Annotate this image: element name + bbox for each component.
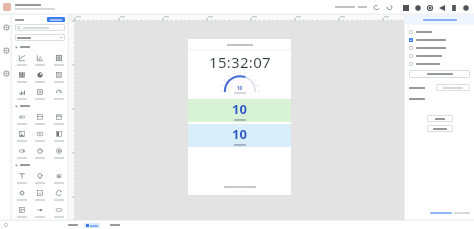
button[interactable]: Component SLIDER (31, 203, 49, 220)
button[interactable]: Component IMG (13, 127, 31, 144)
button[interactable]: Component LIST (50, 68, 68, 85)
button[interactable]: Component CALENDAR (50, 110, 68, 127)
button[interactable]: Zoom (437, 3, 446, 12)
button[interactable]: Section (12, 161, 68, 169)
button[interactable]: Confirm (427, 115, 453, 122)
button[interactable]: Component BARS (13, 85, 31, 102)
button[interactable]: Page tab 2 selected (86, 224, 98, 227)
button[interactable]: Component PIE (31, 68, 49, 85)
button[interactable]: Settings (461, 3, 470, 12)
button[interactable]: Component TEXT (13, 169, 31, 186)
button[interactable]: Component GAUGE (50, 85, 68, 102)
button[interactable]: Component PANEL (50, 127, 68, 144)
button[interactable]: Component PICTURE (31, 186, 49, 203)
button[interactable]: Component DIAL (31, 144, 49, 161)
button[interactable]: Layers (425, 3, 434, 12)
button[interactable]: Data (1, 45, 11, 55)
button[interactable]: Component GRID (31, 85, 49, 102)
button[interactable]: Component BULB (31, 169, 49, 186)
button[interactable]: Component BARCODE (13, 68, 31, 85)
button[interactable]: Section (12, 43, 68, 51)
button[interactable]: Component REFRESH (50, 186, 68, 203)
button[interactable]: Upload (427, 125, 453, 132)
button[interactable]: Component VIDEO (31, 127, 49, 144)
staticText: 10 (232, 125, 247, 143)
button[interactable]: Undo (373, 4, 380, 11)
button[interactable]: Component CARD (31, 110, 49, 127)
button[interactable]: Value field (436, 84, 470, 91)
button[interactable]: Assets (1, 68, 11, 78)
button[interactable]: Sensor value card (188, 124, 291, 147)
button[interactable]: Component LINE (13, 51, 31, 68)
staticText: 10 (237, 85, 243, 91)
button[interactable]: Component CLOUD (50, 169, 68, 186)
button[interactable]: Search components (15, 24, 65, 31)
button[interactable]: Component SCATTER (31, 51, 49, 68)
button[interactable]: Option toggle (405, 28, 474, 36)
button[interactable]: App logo (3, 3, 11, 11)
button[interactable]: Option toggle (405, 52, 474, 60)
button[interactable]: Option toggle (405, 44, 474, 52)
button[interactable]: Component PROGRESS (13, 110, 31, 127)
staticText: 10 (232, 100, 247, 118)
button[interactable]: Add page (110, 224, 120, 226)
button[interactable]: Redo (386, 4, 393, 11)
button[interactable]: Components (1, 22, 11, 32)
button[interactable]: Sensor value card (188, 99, 291, 122)
button[interactable]: Component DOT (50, 144, 68, 161)
button[interactable]: Grid (401, 3, 410, 12)
button[interactable]: Component SWITCH (13, 144, 31, 161)
button[interactable]: Component TABLE (50, 51, 68, 68)
button[interactable]: Category selector (15, 34, 65, 41)
button[interactable]: Save (449, 3, 458, 12)
button[interactable]: Align (413, 3, 422, 12)
button[interactable]: Option toggle (405, 36, 474, 44)
button[interactable]: Component FORM (13, 203, 31, 220)
button[interactable]: Section (12, 102, 68, 110)
button[interactable]: Page tab 1 (68, 224, 78, 226)
button[interactable] (47, 17, 65, 22)
button[interactable]: Add data point (409, 70, 470, 78)
button[interactable]: Option toggle (405, 60, 474, 68)
staticText: 15:32:07 (209, 52, 271, 72)
button[interactable]: Component BTN (50, 203, 68, 220)
button[interactable]: Component COG (13, 186, 31, 203)
